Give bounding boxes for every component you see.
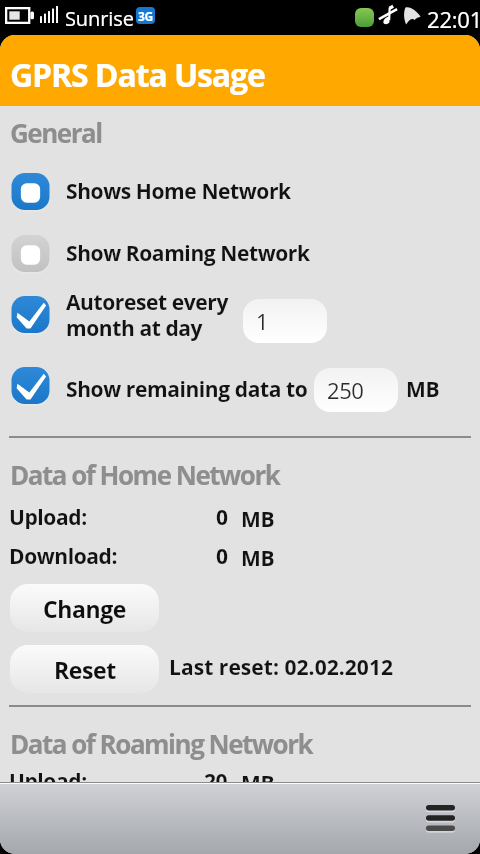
staticText: Autoreset every xyxy=(66,288,229,317)
button[interactable]: Show Roaming Network xyxy=(0,235,480,274)
staticText: Last reset: 02.02.2012 xyxy=(169,653,394,682)
staticText: Upload: xyxy=(9,503,87,529)
staticText: MB xyxy=(406,375,440,404)
staticText: 0 xyxy=(216,542,228,568)
staticText: Show remaining data to xyxy=(66,375,308,404)
staticText: Data of Home Network xyxy=(10,457,280,492)
button[interactable]: Change xyxy=(10,584,159,632)
staticText: Upload: xyxy=(9,767,87,793)
staticText: Download: xyxy=(9,542,118,568)
staticText: Shows Home Network xyxy=(66,177,291,206)
button[interactable]: Reset xyxy=(10,645,159,693)
staticText: Data of Roaming Network xyxy=(10,726,313,761)
button[interactable]: 250 xyxy=(314,368,398,412)
staticText: Sunrise xyxy=(65,5,134,32)
button[interactable]: Shows Home Network xyxy=(0,173,480,212)
staticText: 250 xyxy=(327,375,364,405)
staticText: Reset xyxy=(54,654,116,685)
staticText: MB xyxy=(241,544,275,570)
staticText: MB xyxy=(241,505,275,531)
staticText: 3G xyxy=(138,8,153,24)
staticText: 22:01 xyxy=(427,4,480,34)
staticText: General xyxy=(10,115,102,150)
staticText: MB xyxy=(241,769,275,795)
staticText: Change xyxy=(43,593,126,624)
button[interactable]: 1 xyxy=(243,299,327,343)
staticText: 0 xyxy=(216,503,228,529)
staticText: 1 xyxy=(256,306,269,336)
button[interactable] xyxy=(11,296,50,335)
staticText: 20 xyxy=(204,767,228,793)
staticText: Show Roaming Network xyxy=(66,239,310,268)
staticText: GPRS Data Usage xyxy=(10,53,265,97)
staticText: month at day xyxy=(66,314,203,343)
button[interactable]: Menu xyxy=(412,790,468,846)
button[interactable] xyxy=(0,367,39,406)
